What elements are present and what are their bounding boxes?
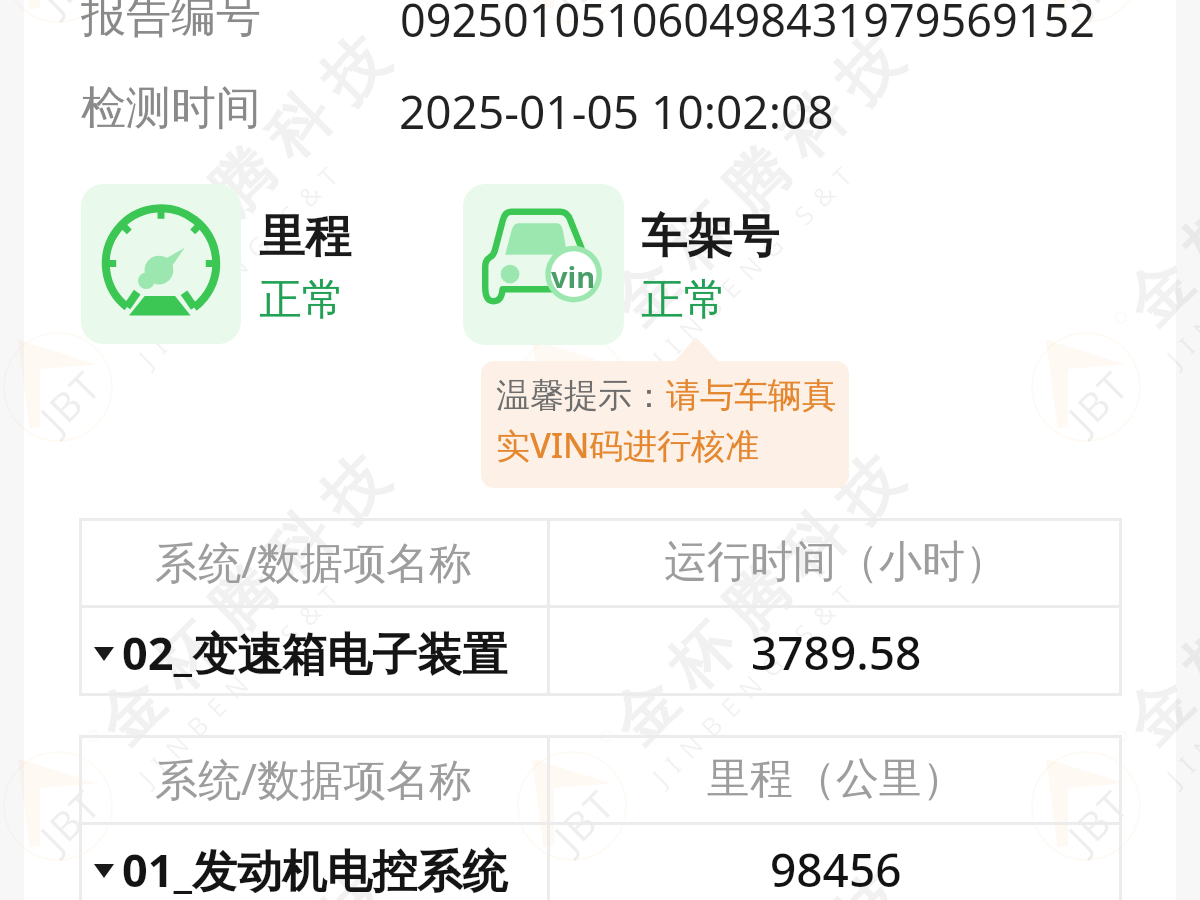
staticText: vin (551, 257, 596, 293)
staticText: JBT (1056, 358, 1140, 442)
staticText: 正常 (641, 273, 727, 327)
staticText: JINBENG S&T (130, 570, 353, 793)
staticText: 3789.58 (751, 621, 922, 684)
staticText: 金杯腾科技 (75, 14, 410, 349)
staticText: 金杯腾科技 (1103, 433, 1200, 768)
staticText: 金杯腾科技 (589, 433, 924, 768)
staticText: 金杯腾科技 (75, 852, 410, 900)
staticText: JBT (28, 777, 112, 861)
staticText: JBT (542, 358, 626, 442)
button[interactable]: 车架号 (463, 184, 624, 345)
staticText: JINBENG S&T (1158, 570, 1200, 793)
staticText: 车架号 (641, 208, 779, 266)
staticText: JBT (542, 777, 626, 861)
staticText: 092501051060498431979569152 (400, 0, 1095, 50)
staticText: 温馨提示：请与车辆真实VIN码进行核准 (496, 374, 841, 468)
staticText: 金杯腾科技 (589, 852, 924, 900)
staticText: 检测时间 (81, 80, 261, 137)
staticText: 金杯腾科技 (75, 433, 410, 768)
staticText: 98456 (770, 838, 902, 900)
staticText: JINBENG S&T (130, 151, 353, 374)
staticText: JBT (1056, 777, 1140, 861)
staticText: JBT (1056, 0, 1140, 24)
staticText: 金杯腾科技 (1103, 852, 1200, 900)
staticText: JINBENG S&T (1158, 151, 1200, 374)
staticText: 正常 (259, 273, 345, 327)
staticText: 02_变速箱电子装置 (122, 622, 507, 683)
staticText: 报告编号 (81, 0, 261, 45)
staticText: 里程（公里） (707, 752, 965, 806)
staticText: 系统/数据项名称 (155, 532, 472, 591)
button[interactable]: 01_发动机电控系统 (79, 825, 547, 900)
staticText: 运行时间（小时） (664, 535, 1008, 589)
button[interactable]: 里程 (81, 184, 241, 344)
staticText: 系统/数据项名称 (155, 749, 472, 808)
staticText: JBT (28, 358, 112, 442)
button[interactable]: 02_变速箱电子装置 (79, 608, 547, 696)
staticText: 里程 (259, 208, 351, 266)
staticText: 金杯腾科技 (589, 14, 924, 349)
staticText: 金杯腾科技 (1103, 14, 1200, 349)
staticText: 01_发动机电控系统 (122, 839, 507, 900)
staticText: JINBENG S&T (644, 570, 867, 793)
staticText: JBT (28, 0, 112, 24)
staticText: JBT (542, 0, 626, 24)
staticText: JINBENG S&T (644, 151, 867, 374)
staticText: 2025-01-05 10:02:08 (399, 80, 834, 143)
